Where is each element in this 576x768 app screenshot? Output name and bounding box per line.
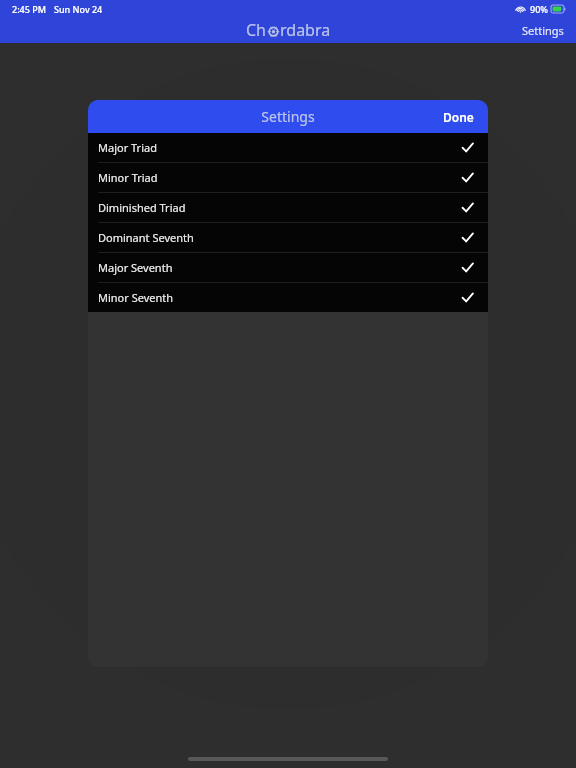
staticText: Major Seventh	[98, 260, 173, 275]
staticText: Minor Seventh	[98, 290, 174, 305]
staticText: Settings	[522, 23, 564, 38]
staticText: Major Triad	[98, 140, 157, 155]
staticText: 2:45 PM	[12, 3, 46, 15]
other: Selected	[461, 291, 474, 304]
button[interactable]: Minor Triad	[88, 163, 488, 192]
other: Selected	[461, 201, 474, 214]
staticText: Ch	[246, 19, 267, 41]
button[interactable]: Done	[429, 103, 488, 131]
staticText: Settings	[261, 107, 315, 126]
button[interactable]: Minor Seventh	[88, 283, 488, 312]
staticText: Dominant Seventh	[98, 230, 194, 245]
button[interactable]: Settings	[510, 19, 576, 42]
other: Selected	[461, 141, 474, 154]
staticText: Minor Triad	[98, 170, 158, 185]
staticText: 90%	[530, 3, 548, 15]
button[interactable]: Dominant Seventh	[88, 223, 488, 252]
button[interactable]: Diminished Triad	[88, 193, 488, 222]
staticText: rdabra	[280, 19, 331, 41]
other: Selected	[461, 171, 474, 184]
staticText: Diminished Triad	[98, 200, 186, 215]
other: Selected	[461, 261, 474, 274]
button[interactable]: Major Seventh	[88, 253, 488, 282]
button[interactable]: Major Triad	[88, 133, 488, 162]
other: Selected	[461, 231, 474, 244]
staticText: Done	[443, 109, 474, 125]
staticText: Sun Nov 24	[54, 3, 103, 15]
